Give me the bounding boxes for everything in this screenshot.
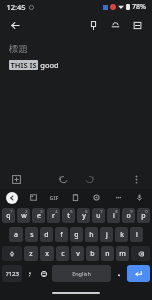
staticText: z xyxy=(29,249,33,259)
button[interactable]: Comma xyxy=(24,266,36,281)
staticText: 標題 xyxy=(9,43,28,55)
button[interactable]: 2 xyxy=(17,208,30,223)
button[interactable]: English xyxy=(52,265,111,282)
button[interactable]: 4 xyxy=(47,208,60,223)
staticText: English xyxy=(72,270,91,277)
button[interactable]: l xyxy=(130,227,143,242)
staticText: good xyxy=(40,60,59,70)
staticText: 8 xyxy=(115,209,118,214)
button[interactable]: z xyxy=(24,246,38,261)
button[interactable]: g xyxy=(70,227,83,242)
staticText: e xyxy=(37,211,41,221)
button[interactable]: v xyxy=(71,246,84,261)
button[interactable]: d xyxy=(40,227,53,242)
button[interactable]: Stickers xyxy=(27,191,40,204)
button[interactable]: Period xyxy=(113,266,125,281)
button[interactable]: Pin xyxy=(85,17,101,33)
button[interactable]: 5 xyxy=(62,208,75,223)
button[interactable]: Undo xyxy=(55,171,71,187)
button[interactable]: 9 xyxy=(122,208,135,223)
staticText: r xyxy=(52,211,55,221)
button[interactable]: Voice input xyxy=(133,191,146,204)
staticText: y xyxy=(82,211,86,221)
button[interactable]: m xyxy=(116,246,129,261)
button[interactable]: Backspace xyxy=(131,246,150,261)
staticText: g xyxy=(74,230,79,240)
staticText: h xyxy=(89,230,94,240)
button[interactable]: GIF xyxy=(48,193,60,202)
staticText: THIS IS xyxy=(10,60,37,70)
staticText: b xyxy=(90,249,95,259)
staticText: 6 xyxy=(85,209,88,214)
staticText: 4 xyxy=(55,209,58,214)
staticText: u xyxy=(96,211,101,221)
staticText: a xyxy=(14,230,18,240)
staticText: o xyxy=(126,211,131,221)
staticText: 9 xyxy=(130,209,133,214)
staticText: 78% xyxy=(132,2,146,12)
button[interactable]: 6 xyxy=(77,208,90,223)
button[interactable]: j xyxy=(100,227,113,242)
button[interactable]: Shift xyxy=(2,246,22,261)
staticText: d xyxy=(44,230,49,240)
staticText: 1 xyxy=(10,209,13,214)
button[interactable]: Enter xyxy=(127,265,150,282)
staticText: GIF xyxy=(49,194,59,201)
button[interactable]: More options xyxy=(128,171,144,187)
button[interactable]: 1 xyxy=(2,208,15,223)
button[interactable]: Back xyxy=(7,17,23,33)
button[interactable]: THIS IS xyxy=(9,60,143,70)
staticText: l xyxy=(136,230,138,240)
button[interactable]: Clipboard xyxy=(69,191,82,204)
button[interactable]: Archive xyxy=(129,17,145,33)
button[interactable]: n xyxy=(101,246,114,261)
staticText: q xyxy=(6,211,11,221)
staticText: 2 xyxy=(25,209,28,214)
button[interactable]: k xyxy=(115,227,128,242)
button[interactable]: 標題 xyxy=(9,43,143,55)
button[interactable]: 0 xyxy=(137,208,150,223)
button[interactable]: Settings xyxy=(90,191,103,204)
button[interactable]: Reminder xyxy=(107,17,123,33)
button[interactable]: 7 xyxy=(92,208,105,223)
staticText: c xyxy=(61,249,65,259)
staticText: 0 xyxy=(145,209,148,214)
staticText: f xyxy=(60,230,63,240)
staticText: p xyxy=(141,211,146,221)
staticText: 3 xyxy=(40,209,43,214)
button[interactable]: Expand toolbar xyxy=(6,192,18,204)
button[interactable]: More xyxy=(112,191,125,204)
button[interactable]: ?123 xyxy=(2,265,22,282)
button[interactable]: 3 xyxy=(32,208,45,223)
button[interactable]: x xyxy=(40,246,54,261)
staticText: i xyxy=(113,211,115,221)
staticText: n xyxy=(105,249,110,259)
staticText: m xyxy=(119,249,126,259)
button[interactable]: f xyxy=(55,227,68,242)
staticText: ?123 xyxy=(6,270,19,278)
button[interactable]: 8 xyxy=(107,208,120,223)
button[interactable]: Emoji xyxy=(38,266,50,281)
staticText: 7 xyxy=(100,209,103,214)
staticText: 12:45 xyxy=(6,2,26,12)
staticText: s xyxy=(30,230,34,240)
button[interactable]: c xyxy=(56,246,69,261)
button[interactable]: Add xyxy=(8,171,24,187)
button[interactable]: a xyxy=(9,227,23,242)
staticText: k xyxy=(120,230,124,240)
staticText: j xyxy=(106,230,108,240)
button[interactable]: Redo xyxy=(81,171,97,187)
button[interactable]: s xyxy=(25,227,38,242)
button[interactable]: h xyxy=(85,227,98,242)
staticText: w xyxy=(21,211,27,221)
staticText: v xyxy=(76,249,80,259)
staticText: t xyxy=(67,211,70,221)
staticText: 5 xyxy=(70,209,73,214)
button[interactable]: b xyxy=(86,246,99,261)
staticText: x xyxy=(45,249,49,259)
